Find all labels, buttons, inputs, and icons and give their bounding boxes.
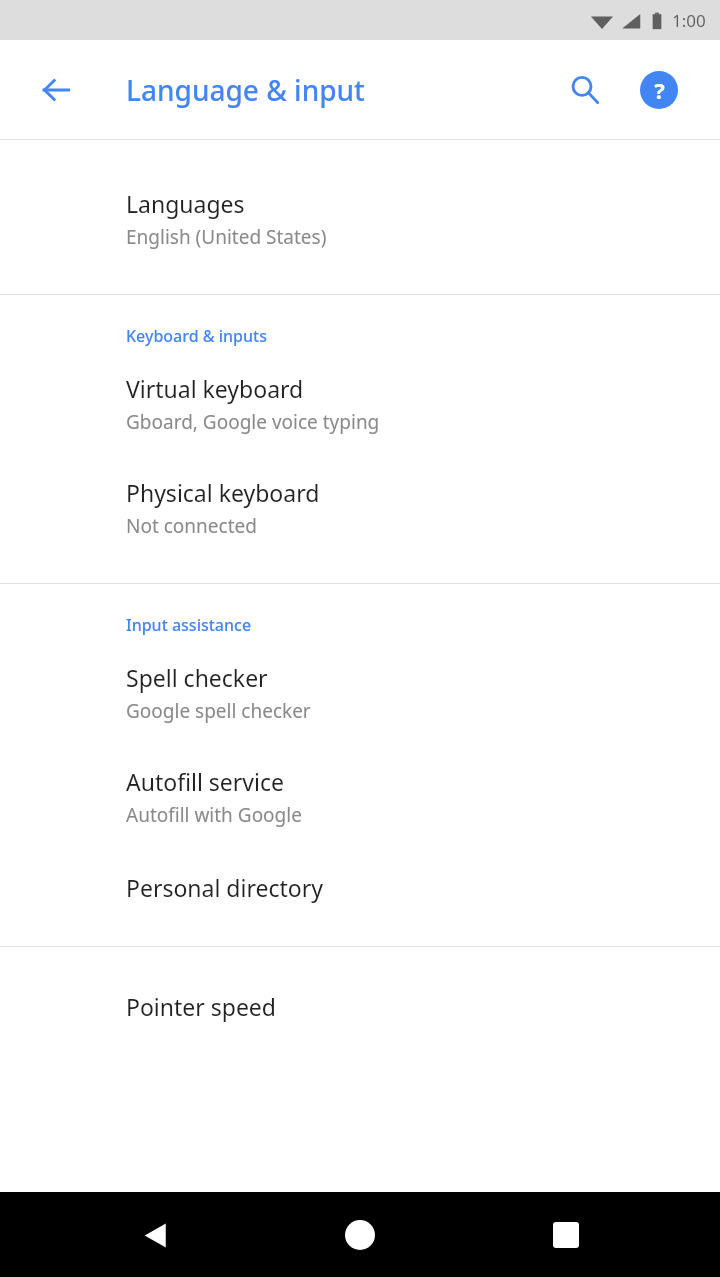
button[interactable]: Virtual keyboard: [0, 347, 720, 435]
staticText: Gboard, Google voice typing: [126, 409, 380, 435]
staticText: Spell checker: [126, 662, 268, 693]
button[interactable]: Physical keyboard: [0, 435, 720, 583]
button[interactable]: Autofill service: [0, 724, 720, 828]
staticText: English (United States): [126, 224, 327, 250]
staticText: Physical keyboard: [126, 477, 320, 508]
staticText: 1:00: [672, 9, 706, 32]
staticText: ?: [654, 75, 665, 105]
button[interactable]: Pointer speed: [0, 947, 720, 1022]
button[interactable]: Spell checker: [0, 636, 720, 724]
staticText: Autofill service: [126, 766, 284, 797]
staticText: Keyboard & inputs: [126, 325, 720, 347]
staticText: Not connected: [126, 513, 257, 539]
staticText: Languages: [126, 188, 245, 219]
button[interactable]: Help: [628, 59, 690, 121]
button[interactable]: Search: [554, 59, 616, 121]
button[interactable]: Recent apps: [534, 1203, 598, 1267]
staticText: Google spell checker: [126, 698, 311, 724]
staticText: Input assistance: [126, 614, 720, 636]
staticText: Personal directory: [126, 872, 323, 903]
staticText: Language & input: [126, 71, 365, 109]
button[interactable]: Back: [22, 56, 90, 124]
staticText: Pointer speed: [126, 991, 276, 1022]
button[interactable]: Languages: [0, 140, 720, 294]
button[interactable]: Home: [328, 1203, 392, 1267]
staticText: Autofill with Google: [126, 802, 302, 828]
staticText: Virtual keyboard: [126, 373, 304, 404]
button[interactable]: Personal directory: [0, 828, 720, 946]
button[interactable]: Back: [123, 1203, 187, 1267]
